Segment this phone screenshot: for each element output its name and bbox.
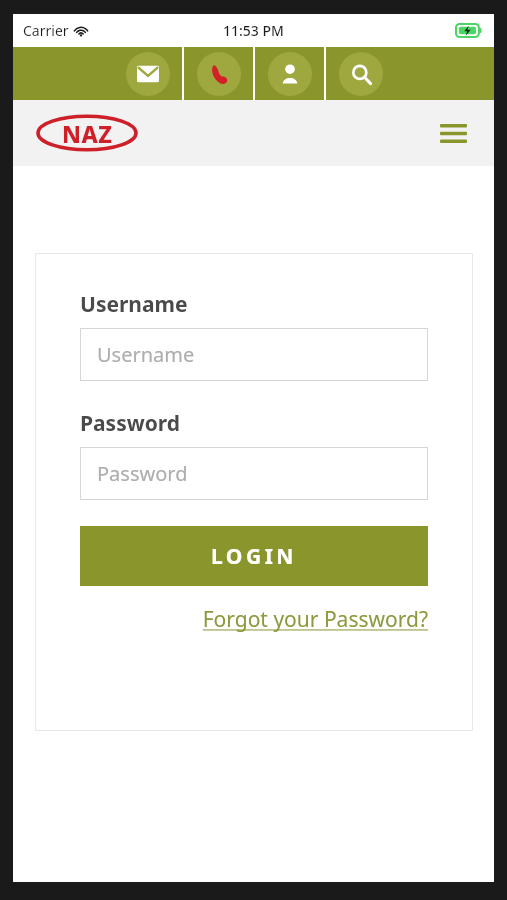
staticText: Username <box>97 341 195 368</box>
staticText: Carrier <box>23 21 69 40</box>
button[interactable]: Call <box>184 47 253 100</box>
staticText: Password <box>80 409 181 438</box>
staticText: NAZ <box>62 118 113 149</box>
staticText: LOGIN <box>211 542 297 571</box>
button[interactable]: LOGIN <box>80 526 428 586</box>
button[interactable]: Menu <box>436 116 470 150</box>
staticText: Username <box>80 290 188 319</box>
button[interactable]: Forgot your Password? <box>202 602 428 637</box>
staticText: 11:53 PM <box>223 21 284 40</box>
button[interactable]: Username <box>80 328 428 381</box>
button[interactable]: NAZ home <box>38 112 136 154</box>
staticText: Forgot your Password? <box>202 605 428 634</box>
button[interactable]: Search <box>326 47 395 100</box>
button[interactable]: Account <box>255 47 324 100</box>
button[interactable]: Password <box>80 447 428 500</box>
button[interactable]: Email <box>113 47 182 100</box>
staticText: Password <box>97 460 188 487</box>
